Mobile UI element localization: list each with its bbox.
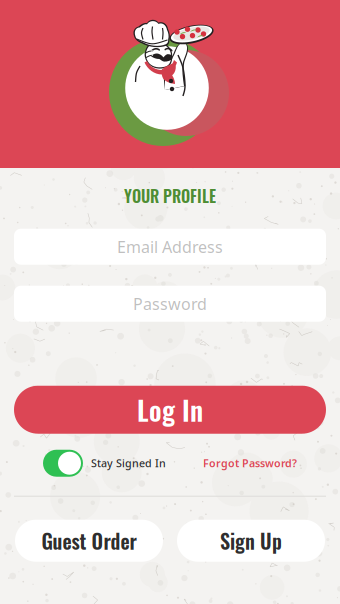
staticText: Guest Order bbox=[41, 526, 136, 555]
button[interactable]: Forgot Password? bbox=[203, 456, 297, 470]
button[interactable]: Sign Up bbox=[177, 520, 325, 562]
button[interactable]: Stay Signed In bbox=[43, 450, 166, 477]
staticText: Sign Up bbox=[220, 526, 282, 555]
staticText: Password bbox=[133, 293, 207, 314]
staticText: Log In bbox=[137, 390, 203, 429]
staticText: Forgot Password? bbox=[203, 456, 297, 470]
staticText: YOUR PROFILE bbox=[124, 184, 216, 208]
button[interactable]: Log In bbox=[0, 386, 340, 434]
button[interactable]: Guest Order bbox=[15, 520, 163, 562]
staticText: Stay Signed In bbox=[91, 456, 166, 470]
staticText: Email Address bbox=[117, 236, 223, 257]
